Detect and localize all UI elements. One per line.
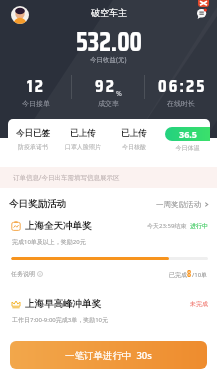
staticText: 一笔订单进行中 30s [65,349,152,362]
staticText: 36.5 [179,128,197,140]
button[interactable]: 今日已签 [8,119,58,160]
button[interactable]: 已上传 [58,119,108,160]
button[interactable]: Profile [11,6,29,24]
button[interactable]: Messages [197,9,207,19]
staticText: 订单信息/今日出车需填写信息展示区 [13,173,120,182]
staticText: 今日奖励活动 [9,198,66,210]
staticText: /10单 [192,271,208,279]
staticText: 任务说明 [11,270,35,278]
staticText: 今日收益(元) [90,55,127,64]
button[interactable]: 一周奖励活动 [156,197,209,212]
staticText: 上海全天冲单奖 [25,220,92,232]
staticText: 完成10单及以上，奖励20元 [12,238,86,246]
staticText: 今日核酸 [122,143,146,151]
staticText: 8 [187,267,192,280]
staticText: 破空车主 [91,7,127,18]
staticText: 在线时长 [167,99,195,108]
staticText: 口罩人脸照片 [65,143,101,151]
staticText: 防疫承诺书 [18,143,48,151]
staticText: 一周奖励活动 [156,200,201,209]
staticText: 已上传 [121,128,147,139]
staticText: 12 [27,72,46,100]
staticText: 今日接单 [22,99,50,108]
staticText: 已完成 [169,271,187,279]
button[interactable]: 上海早高峰冲单奖 [0,298,217,324]
button[interactable]: Activity banner [198,0,209,7]
staticText: 532.00 [76,21,142,62]
button[interactable]: 上海全天冲单奖 [0,220,217,280]
staticText: 06:25 [158,72,207,100]
staticText: 今天23:59结束 [147,222,187,230]
button[interactable]: 36.5 [165,127,210,141]
staticText: 成交率 [98,99,119,108]
staticText: 工作日7:00-9:00完成3单，奖励10元 [12,316,109,324]
button[interactable]: 已上传 [108,119,159,160]
staticText: 进行中 [190,222,208,230]
staticText: 未完成 [190,300,208,308]
staticText: % [116,89,122,99]
staticText: 已上传 [70,128,96,139]
staticText: 今日已签 [16,128,50,139]
staticText: 92 [95,72,117,100]
staticText: 今日体温 [162,144,210,152]
staticText: 上海早高峰冲单奖 [25,298,101,310]
button[interactable]: 一笔订单进行中 30s [10,341,207,369]
